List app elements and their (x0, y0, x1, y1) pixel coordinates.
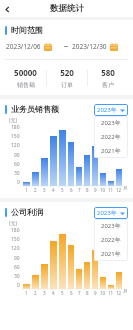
staticText: 580 (101, 67, 115, 78)
staticText: 5 (61, 187, 64, 193)
button[interactable]: 2023年 (94, 207, 128, 219)
button[interactable]: 2023年 (94, 219, 128, 233)
staticText: 2022年 (101, 236, 121, 244)
button[interactable]: 50000 (5, 67, 46, 89)
staticText: 2023/12/06 (6, 42, 41, 51)
staticText: 2021年 (101, 147, 121, 155)
staticText: 11 (108, 187, 114, 193)
staticText: 5 (61, 290, 64, 296)
staticText: 12 (116, 290, 122, 296)
staticText: 0 (17, 179, 20, 186)
staticText: 7 (78, 187, 81, 193)
button[interactable]: 2022年 (94, 233, 128, 247)
staticText: 10 (100, 290, 106, 296)
button[interactable]: 2023/12/30 (71, 40, 128, 53)
staticText: 10 (100, 187, 106, 193)
staticText: 客户 (102, 81, 114, 89)
staticText: 6 (70, 290, 73, 296)
staticText: 90 (14, 152, 20, 159)
staticText: 月 (123, 289, 128, 295)
button[interactable]: 2021年 (94, 144, 128, 158)
staticText: 2021年 (101, 250, 121, 258)
button[interactable]: 520 (47, 67, 87, 89)
staticText: 9 (94, 187, 97, 193)
button[interactable]: Back (0, 2, 14, 16)
staticText: 3 (43, 290, 46, 296)
button[interactable]: 2023年 (94, 116, 128, 130)
staticText: 180 (11, 227, 20, 234)
staticText: 2023年 (101, 222, 121, 230)
staticText: 12 (116, 187, 122, 193)
staticText: 180 (11, 124, 20, 131)
staticText: 订单 (61, 81, 73, 89)
staticText: 2022年 (101, 133, 121, 141)
staticText: 90 (14, 255, 20, 262)
staticText: 1 (25, 187, 28, 193)
staticText: 8 (86, 290, 89, 296)
staticText: 150 (11, 236, 20, 243)
staticText: 公司利润 (11, 207, 43, 217)
staticText: 2 (34, 187, 37, 193)
staticText: 50000 (14, 67, 37, 78)
button[interactable]: 2021年 (94, 247, 128, 261)
staticText: 7 (78, 290, 81, 296)
staticText: 1 (25, 290, 28, 296)
staticText: 60 (14, 161, 20, 168)
staticText: 60 (14, 264, 20, 271)
staticText: 30 (14, 170, 20, 177)
staticText: 销售额 (17, 81, 35, 89)
staticText: 2 (34, 290, 37, 296)
staticText: 2023/12/30 (72, 42, 107, 51)
staticText: 月 (123, 186, 128, 192)
staticText: (元) (9, 117, 18, 124)
staticText: 时间范围 (11, 25, 43, 35)
staticText: 2023年 (97, 209, 117, 217)
button[interactable]: 2022年 (94, 130, 128, 144)
staticText: 520 (60, 67, 74, 78)
button[interactable]: 580 (88, 67, 128, 89)
staticText: 数据统计 (50, 3, 84, 14)
staticText: 120 (11, 142, 20, 149)
staticText: 30 (14, 273, 20, 280)
staticText: 4 (52, 187, 55, 193)
button[interactable]: 2023/12/06 (5, 40, 61, 53)
staticText: 6 (70, 187, 73, 193)
staticText: 11 (108, 290, 114, 296)
staticText: 2023年 (101, 119, 121, 127)
staticText: 150 (11, 133, 20, 140)
staticText: 0 (17, 282, 20, 289)
staticText: 120 (11, 245, 20, 252)
staticText: 8 (86, 187, 89, 193)
button[interactable]: 2023年 (94, 104, 128, 116)
staticText: (元) (9, 220, 18, 227)
staticText: 2023年 (97, 106, 117, 114)
staticText: 4 (52, 290, 55, 296)
staticText: 3 (43, 187, 46, 193)
staticText: 9 (94, 290, 97, 296)
staticText: 业务员销售额 (11, 104, 59, 114)
